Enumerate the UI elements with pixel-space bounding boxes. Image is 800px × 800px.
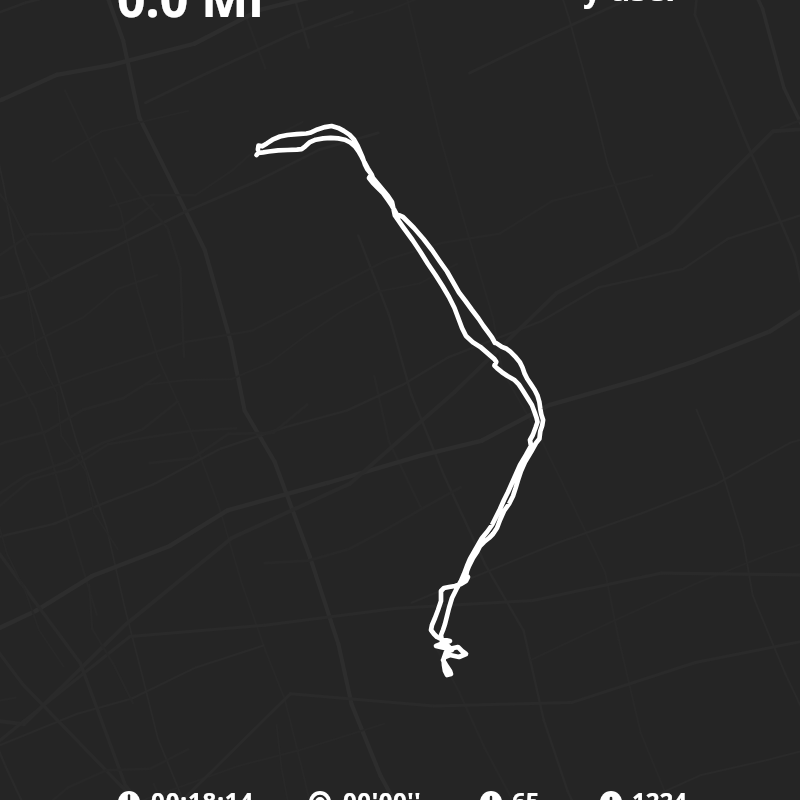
button[interactable]: 65 bbox=[512, 784, 540, 800]
other: Activity route map bbox=[0, 0, 800, 800]
button[interactable]: 00:18:14 bbox=[151, 784, 255, 800]
button[interactable]: Pace bbox=[309, 791, 399, 800]
button[interactable]: 1224 bbox=[632, 784, 687, 800]
button[interactable]: Calories bbox=[600, 791, 688, 800]
button[interactable]: Duration bbox=[118, 791, 207, 800]
button[interactable]: 0.0 Mi bbox=[117, 0, 264, 32]
button[interactable]: y user bbox=[583, 0, 680, 11]
button[interactable]: 00'00'' bbox=[343, 784, 422, 800]
button[interactable]: Heart rate bbox=[480, 791, 569, 800]
